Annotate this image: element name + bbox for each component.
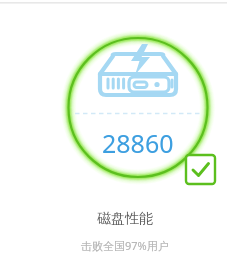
button[interactable]: Disk performance score 28860 <box>0 0 250 267</box>
